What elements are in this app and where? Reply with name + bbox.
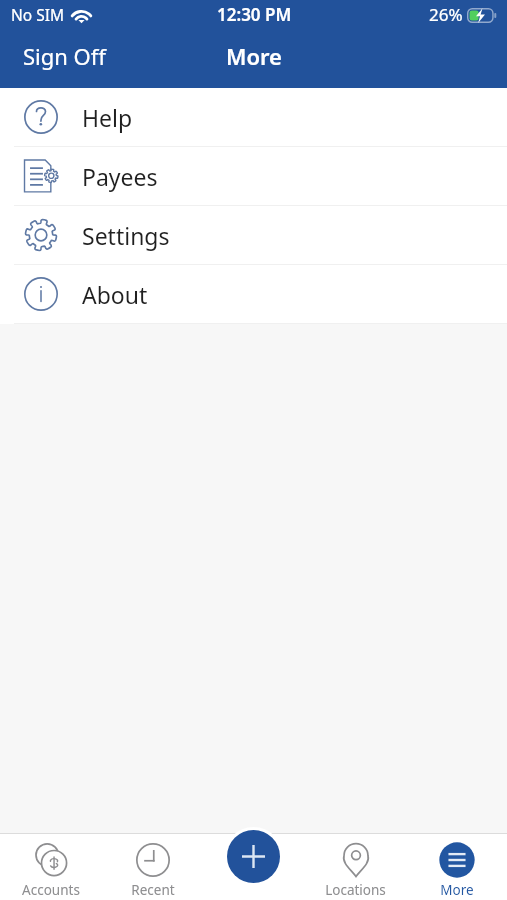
staticText: Payees (82, 161, 158, 192)
staticText: Accounts (22, 881, 80, 899)
staticText: Help (82, 102, 133, 133)
staticText: Settings (82, 220, 170, 251)
staticText: More (226, 41, 282, 71)
button[interactable]: Payees (0, 147, 507, 205)
button[interactable]: Sign Off (0, 31, 126, 81)
staticText: About (82, 279, 148, 310)
staticText: Locations (325, 881, 386, 899)
button[interactable]: Accounts (0, 833, 102, 900)
staticText: Sign Off (23, 41, 106, 71)
staticText: 26% (429, 3, 463, 26)
button[interactable]: Add (227, 830, 280, 883)
staticText: More (440, 881, 474, 899)
button[interactable]: About (0, 265, 507, 323)
button[interactable]: Locations (305, 833, 406, 900)
staticText: Recent (131, 881, 175, 899)
button[interactable]: Recent (102, 833, 204, 900)
button[interactable]: Help (0, 88, 507, 146)
button[interactable]: More (406, 833, 507, 900)
button[interactable]: Settings (0, 206, 507, 264)
staticText: 12:30 PM (217, 3, 292, 26)
staticText: No SIM (11, 4, 65, 25)
